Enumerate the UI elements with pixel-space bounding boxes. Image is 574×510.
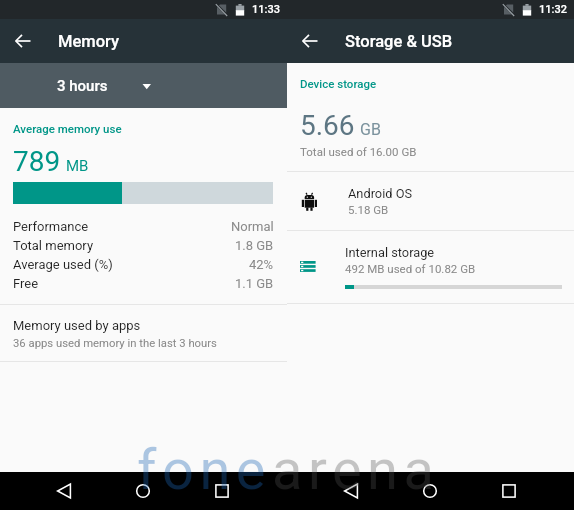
staticText: arena — [272, 437, 440, 503]
button[interactable]: Recent apps — [485, 472, 533, 510]
staticText: Device storage — [300, 77, 377, 90]
staticText: GB — [360, 120, 381, 139]
staticText: 36 apps used memory in the last 3 hours — [13, 337, 217, 350]
button[interactable]: Navigate up — [0, 19, 45, 63]
staticText: Android OS — [348, 186, 413, 201]
staticText: 11:33 — [252, 3, 280, 16]
button[interactable]: Recent apps — [198, 472, 246, 510]
staticText: 492 MB used of 10.82 GB — [345, 262, 476, 275]
staticText: MB — [66, 157, 89, 175]
staticText: 11:32 — [539, 3, 567, 16]
staticText: Average used (%) — [13, 257, 113, 272]
staticText: Normal — [231, 219, 274, 234]
staticText: 1.1 GB — [235, 276, 274, 291]
staticText: Total used of 16.00 GB — [300, 145, 417, 158]
button[interactable]: Home — [119, 472, 167, 510]
button[interactable]: Internal storage — [287, 231, 574, 303]
button[interactable]: Android OS — [287, 172, 574, 230]
staticText: 1.8 GB — [235, 238, 274, 253]
staticText: 42% — [249, 257, 274, 272]
button[interactable]: Memory used by apps — [0, 305, 287, 361]
button[interactable]: Back — [327, 472, 375, 510]
staticText: fone — [137, 437, 272, 503]
staticText: Total memory — [13, 238, 94, 253]
staticText: Free — [13, 276, 39, 291]
button[interactable]: Navigate up — [287, 19, 332, 63]
button[interactable]: Home — [406, 472, 454, 510]
button[interactable]: Back — [40, 472, 88, 510]
button[interactable]: 3 hours — [0, 63, 287, 108]
staticText: Memory used by apps — [13, 318, 141, 333]
staticText: Performance — [13, 219, 89, 234]
staticText: Memory — [58, 32, 120, 51]
staticText: Average memory use — [13, 122, 122, 135]
staticText: Storage & USB — [345, 32, 453, 51]
staticText: Internal storage — [345, 245, 435, 260]
staticText: 5.18 GB — [348, 203, 389, 216]
staticText: 5.66 — [300, 109, 355, 142]
staticText: 789 — [13, 145, 61, 178]
staticText: 3 hours — [57, 77, 108, 95]
